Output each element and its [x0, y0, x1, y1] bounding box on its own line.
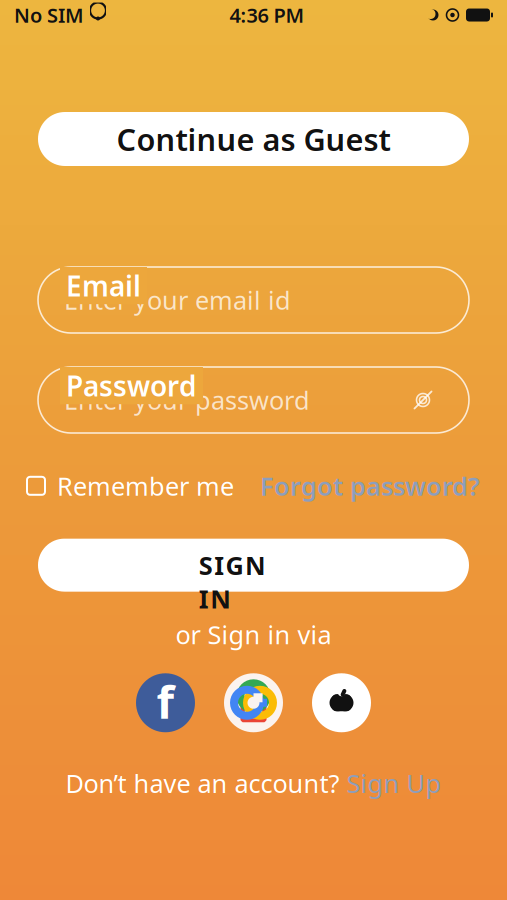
- staticText: Password: [66, 367, 197, 404]
- staticText: Enter your email id: [64, 283, 291, 317]
- button[interactable]: Show password: [403, 383, 443, 417]
- button[interactable]: Forgot password?: [260, 463, 480, 509]
- staticText: f: [156, 671, 174, 731]
- button[interactable]: Continue as Guest: [38, 112, 469, 166]
- button[interactable]: Sign in with Apple: [312, 673, 371, 732]
- staticText: No SIM: [14, 2, 84, 28]
- button[interactable]: Remember me: [27, 463, 234, 509]
- staticText: 4:36 PM: [229, 2, 304, 28]
- button[interactable]: Don’t have an account?: [65, 760, 441, 806]
- button[interactable]: SIGN IN: [38, 539, 469, 592]
- button[interactable]: Sign in with Facebook: [136, 673, 195, 732]
- button[interactable]: Sign in with Google: [224, 673, 283, 732]
- staticText: Sign Up: [346, 766, 441, 800]
- staticText: Forgot password?: [260, 469, 480, 503]
- staticText: or Sign in via: [175, 618, 331, 651]
- staticText: Continue as Guest: [116, 119, 390, 159]
- staticText: Enter your password: [64, 383, 310, 417]
- staticText: Remember me: [57, 469, 234, 503]
- staticText: Email: [66, 267, 141, 304]
- staticText: SIGN IN: [199, 548, 308, 582]
- staticText: Don’t have an account?: [65, 766, 339, 800]
